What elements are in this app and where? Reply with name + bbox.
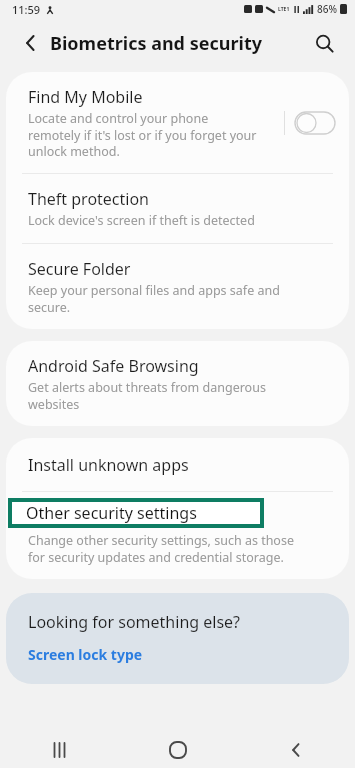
button[interactable]: Recent apps: [0, 732, 119, 768]
button[interactable]: Android Safe Browsing: [6, 341, 349, 426]
button[interactable]: Find My Mobile: [6, 72, 349, 173]
button[interactable]: Search: [305, 24, 343, 62]
staticText: Get alerts about threats from dangerous …: [28, 379, 266, 412]
staticText: Secure Folder: [28, 258, 131, 280]
staticText: LTE1: [278, 6, 290, 13]
staticText: Install unknown apps: [28, 454, 189, 476]
staticText: Theft protection: [28, 188, 150, 210]
button[interactable]: Install unknown apps: [6, 438, 349, 491]
staticText: Biometrics and security: [50, 31, 262, 56]
staticText: Lock device's screen if theft is detecte…: [28, 212, 255, 229]
button[interactable]: Secure Folder: [6, 244, 349, 329]
button[interactable]: Screen lock type: [28, 645, 143, 664]
button[interactable]: Other security settings: [6, 492, 349, 579]
staticText: Locate and control your phone remotely i…: [28, 110, 257, 159]
staticText: Screen lock type: [28, 645, 143, 664]
staticText: Other security settings: [26, 502, 197, 524]
staticText: Android Safe Browsing: [28, 355, 199, 377]
button[interactable]: Back: [12, 24, 50, 62]
button[interactable]: Find My Mobile toggle: [295, 112, 335, 134]
staticText: Find My Mobile: [28, 86, 143, 108]
staticText: Change other security settings, such as …: [28, 532, 294, 565]
staticText: Keep your personal files and apps safe a…: [28, 282, 280, 315]
staticText: 11:59: [12, 2, 41, 17]
staticText: 86%: [317, 2, 337, 16]
staticText: Looking for something else?: [28, 611, 241, 633]
button[interactable]: Home: [119, 732, 237, 768]
button[interactable]: Back: [237, 732, 355, 768]
button[interactable]: Theft protection: [6, 174, 349, 243]
